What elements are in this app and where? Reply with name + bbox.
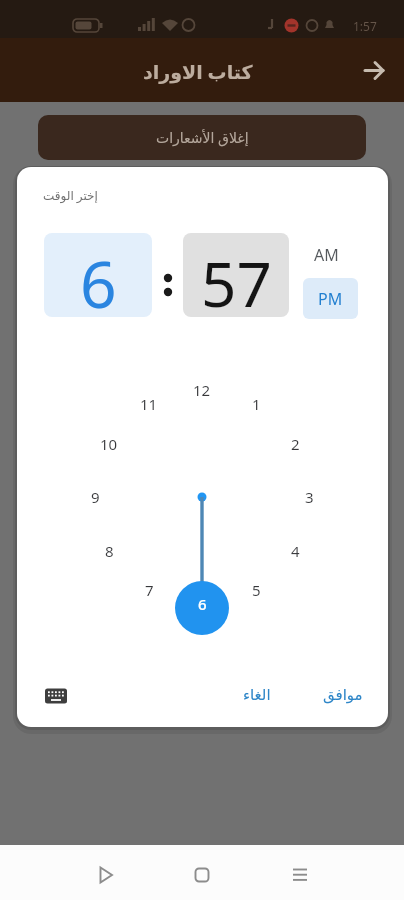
button[interactable]: PM <box>303 278 358 319</box>
button[interactable]: 5 <box>236 576 276 604</box>
staticText: 12 <box>193 380 211 400</box>
staticText: 6 <box>80 240 117 317</box>
staticText: 10 <box>100 434 118 454</box>
staticText: كتاب الاوراد <box>143 59 253 85</box>
button[interactable]: AM <box>314 244 339 266</box>
button[interactable]: 11 <box>129 390 169 418</box>
staticText: 11 <box>140 394 158 414</box>
staticText: 57 <box>201 241 272 317</box>
staticText: الغاء <box>243 686 271 703</box>
button[interactable]: 12 <box>182 376 222 404</box>
button[interactable]: 9 <box>75 483 115 511</box>
button[interactable]: 8 <box>89 537 129 565</box>
button[interactable] <box>39 679 73 713</box>
staticText: 7 <box>145 580 154 600</box>
button[interactable]: 3 <box>289 483 329 511</box>
staticText: 4 <box>291 541 300 561</box>
button[interactable] <box>364 60 385 81</box>
button[interactable]: 1 <box>236 390 276 418</box>
staticText: 3 <box>305 487 314 507</box>
staticText: PM <box>318 288 343 310</box>
staticText: 2 <box>291 434 300 454</box>
button[interactable]: 4 <box>275 537 315 565</box>
button[interactable]: 6 <box>44 233 152 317</box>
staticText: 6 <box>198 594 207 614</box>
button[interactable] <box>91 861 119 889</box>
button[interactable] <box>188 861 216 889</box>
button[interactable]: 10 <box>89 430 129 458</box>
button[interactable] <box>286 861 314 889</box>
staticText: 9 <box>91 487 100 507</box>
staticText: 1 <box>252 394 261 414</box>
staticText: موافق <box>323 686 363 703</box>
staticText: 5 <box>252 580 261 600</box>
staticText: 1:57 <box>353 18 377 34</box>
button[interactable]: الغاء <box>224 673 290 715</box>
button[interactable]: 2 <box>275 430 315 458</box>
button[interactable]: 6 <box>182 590 222 618</box>
button[interactable]: 57 <box>183 233 289 317</box>
button[interactable]: إغلاق الأشعارات <box>38 115 366 160</box>
button[interactable]: موافق <box>310 673 376 715</box>
staticText: إغلاق الأشعارات <box>156 128 249 147</box>
staticText: 8 <box>105 541 114 561</box>
staticText: إختر الوقت <box>43 187 98 203</box>
button[interactable]: 7 <box>129 576 169 604</box>
